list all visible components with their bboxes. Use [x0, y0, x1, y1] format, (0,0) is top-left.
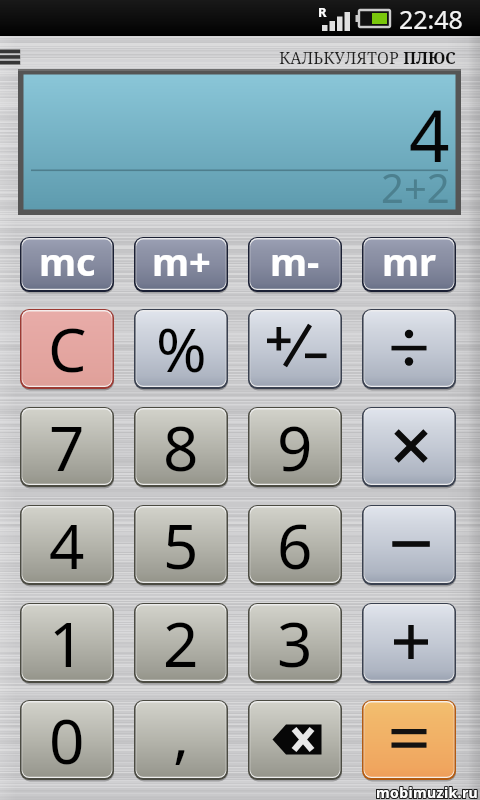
- staticText: 5: [163, 503, 199, 587]
- button[interactable]: 0: [20, 700, 114, 784]
- staticText: mr: [382, 235, 437, 287]
- button[interactable]: m+: [134, 237, 228, 296]
- button[interactable]: 6: [248, 505, 342, 589]
- button[interactable]: Plus: [362, 603, 456, 687]
- button[interactable]: 7: [20, 407, 114, 491]
- staticText: mobimuzik.ru: [377, 784, 480, 800]
- button[interactable]: Menu: [0, 44, 28, 68]
- button[interactable]: C: [20, 309, 114, 393]
- staticText: m+: [152, 235, 211, 287]
- staticText: 1: [49, 601, 85, 685]
- staticText: 8: [163, 405, 199, 489]
- staticText: 4: [49, 503, 85, 587]
- staticText: mobimuzik.ru: [376, 782, 479, 800]
- staticText: mobimuzik.ru: [375, 784, 478, 800]
- staticText: 2: [163, 601, 199, 685]
- button[interactable]: m-: [248, 237, 342, 296]
- button[interactable]: Equals: [362, 700, 456, 784]
- staticText: 7: [49, 405, 85, 489]
- button[interactable]: 4: [20, 505, 114, 589]
- staticText: m-: [270, 235, 320, 287]
- button[interactable]: ,: [134, 700, 228, 784]
- staticText: 9: [277, 405, 313, 489]
- staticText: C: [48, 307, 87, 390]
- staticText: 6: [277, 503, 313, 587]
- button[interactable]: Divide: [362, 309, 456, 393]
- staticText: mobimuzik.ru: [375, 782, 478, 800]
- button[interactable]: mr: [362, 237, 456, 296]
- staticText: 0: [49, 698, 85, 782]
- staticText: 22:48: [399, 2, 463, 36]
- staticText: ПЛЮС: [399, 47, 456, 69]
- staticText: КАЛЬКУЛЯТОР: [279, 47, 399, 69]
- staticText: R: [318, 3, 327, 21]
- button[interactable]: 8: [134, 407, 228, 491]
- staticText: 4: [409, 86, 450, 183]
- staticText: mc: [39, 235, 96, 287]
- staticText: mobimuzik.ru: [377, 782, 480, 800]
- button[interactable]: Plus minus: [248, 309, 342, 393]
- button[interactable]: Multiply: [362, 407, 456, 491]
- staticText: ,: [173, 693, 190, 775]
- staticText: %: [156, 307, 207, 390]
- button[interactable]: Backspace: [248, 700, 342, 784]
- staticText: mobimuzik.ru: [376, 783, 479, 800]
- button[interactable]: Minus: [362, 505, 456, 589]
- button[interactable]: mc: [20, 237, 114, 296]
- staticText: 2+2: [381, 160, 450, 214]
- staticText: mobimuzik.ru: [376, 784, 479, 800]
- button[interactable]: 5: [134, 505, 228, 589]
- staticText: mobimuzik.ru: [375, 783, 478, 800]
- button[interactable]: 9: [248, 407, 342, 491]
- button[interactable]: %: [134, 309, 228, 393]
- staticText: 3: [277, 601, 313, 685]
- button[interactable]: 2: [134, 603, 228, 687]
- staticText: mobimuzik.ru: [377, 783, 480, 800]
- button[interactable]: 3: [248, 603, 342, 687]
- button[interactable]: 1: [20, 603, 114, 687]
